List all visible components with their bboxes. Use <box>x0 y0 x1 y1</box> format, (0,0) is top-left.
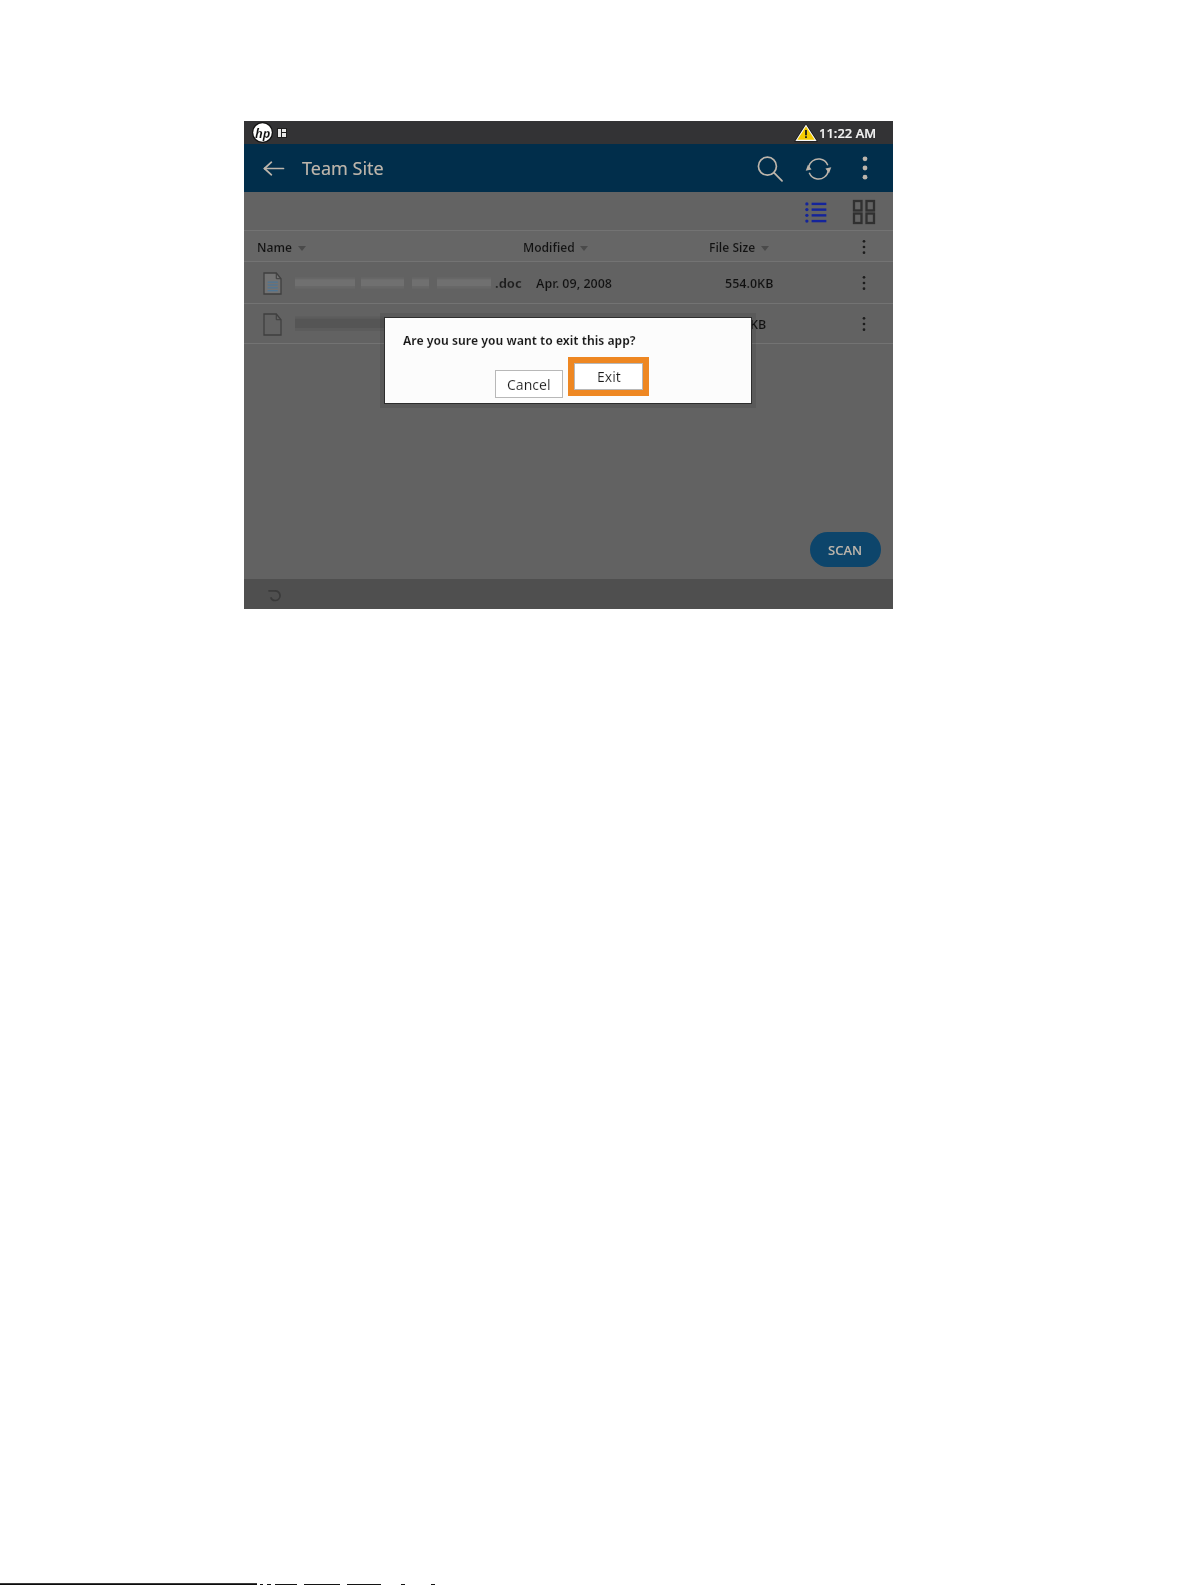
button[interactable]: Column options <box>851 234 877 260</box>
button[interactable]: Item options <box>851 311 877 337</box>
staticText: Modified <box>523 239 575 255</box>
staticText: Are you sure you want to exit this app? <box>403 332 636 348</box>
button[interactable]: SCAN <box>810 532 881 567</box>
button[interactable]: Name <box>257 239 306 255</box>
button[interactable]: Refresh <box>796 144 840 192</box>
staticText: 554.0KB <box>725 275 774 292</box>
button[interactable]: Back <box>263 583 285 605</box>
staticText: Cancel <box>507 375 551 394</box>
staticText: 50.0KB <box>725 316 767 333</box>
button[interactable]: Grid view <box>849 197 879 227</box>
staticText: SCAN <box>828 541 863 559</box>
staticText: Apr. 09, 2008 <box>536 275 612 292</box>
button[interactable]: 50.0KB <box>244 304 893 344</box>
staticText: Exit <box>597 367 621 386</box>
staticText: 11:22 AM <box>819 124 877 142</box>
staticText: Team Site <box>302 156 384 181</box>
button[interactable]: Item options <box>851 270 877 296</box>
button[interactable]: File Size <box>709 239 769 255</box>
button[interactable]: List view <box>801 197 831 227</box>
button[interactable]: Search <box>747 144 791 192</box>
button[interactable]: Navigate up <box>244 144 302 192</box>
button[interactable]: Exit <box>574 363 643 390</box>
button[interactable]: Modified <box>523 239 588 255</box>
staticText: hp <box>255 124 271 142</box>
button[interactable]: More options <box>847 144 882 192</box>
staticText: Name <box>257 239 293 255</box>
staticText: .doc <box>495 274 522 292</box>
button[interactable]: Cancel <box>495 370 563 398</box>
button[interactable]: .doc <box>244 262 893 304</box>
staticText: File Size <box>709 239 756 255</box>
